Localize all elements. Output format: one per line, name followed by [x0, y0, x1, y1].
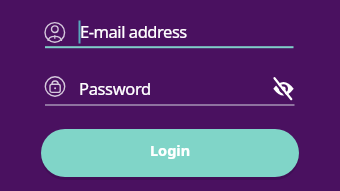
- staticText: E-mail address: [80, 20, 187, 42]
- button[interactable]: [40, 14, 294, 48]
- staticText: Login: [150, 140, 191, 160]
- button[interactable]: [40, 70, 294, 106]
- button[interactable]: [268, 74, 298, 104]
- staticText: Password: [79, 77, 151, 99]
- button[interactable]: Login: [41, 129, 299, 177]
